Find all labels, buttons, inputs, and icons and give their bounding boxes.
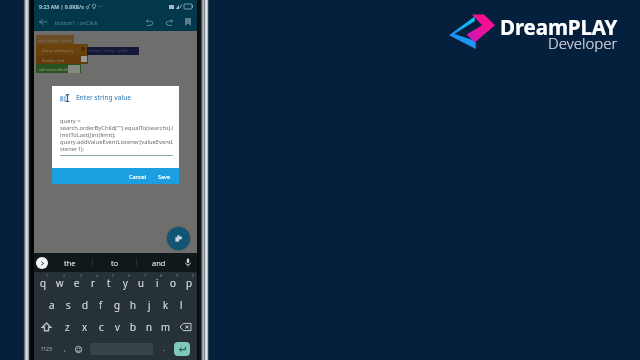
- staticText: to: [111, 258, 119, 268]
- staticText: w: [56, 276, 64, 290]
- button[interactable]: Add block: [167, 227, 190, 250]
- button[interactable]: u: [133, 272, 149, 294]
- staticText: m: [161, 320, 170, 334]
- staticText: y: [123, 276, 128, 290]
- staticText: the: [64, 258, 76, 268]
- staticText: p: [186, 276, 192, 290]
- staticText: 4: [96, 273, 99, 278]
- staticText: firebase : (Query) getRef: [89, 49, 128, 53]
- staticText: ,: [64, 344, 66, 354]
- staticText: ?123: [41, 346, 52, 353]
- button[interactable]: l: [173, 294, 189, 316]
- button[interactable]: y: [117, 272, 133, 294]
- staticText: 9:23 AM | 0.0KB/s: [39, 3, 84, 10]
- button[interactable]: h: [125, 294, 141, 316]
- button[interactable]: and: [137, 253, 180, 272]
- staticText: b: [130, 320, 136, 334]
- button[interactable]: Back: [34, 13, 52, 31]
- button[interactable]: s: [60, 294, 77, 316]
- staticText: 1: [46, 273, 49, 278]
- staticText: t: [107, 276, 111, 290]
- button[interactable]: v: [109, 316, 125, 338]
- staticText: q: [40, 276, 46, 290]
- staticText: a: [49, 298, 55, 312]
- staticText: query = search.orderByChild("").equalTo(…: [60, 117, 173, 153]
- staticText: u: [138, 276, 144, 290]
- button[interactable]: Save: [179, 13, 196, 31]
- button[interactable]: n: [141, 316, 157, 338]
- staticText: Query searchquery: [42, 48, 74, 53]
- button[interactable]: .: [157, 338, 171, 360]
- button[interactable]: c: [93, 316, 109, 338]
- button[interactable]: Save: [155, 170, 174, 183]
- staticText: DreamPLAY: [500, 13, 618, 41]
- staticText: 6: [128, 273, 131, 278]
- staticText: Number limit: [42, 58, 65, 63]
- button[interactable]: f: [93, 294, 109, 316]
- button[interactable]: ?123: [34, 338, 59, 360]
- button[interactable]: x: [76, 316, 93, 338]
- staticText: 5: [112, 273, 115, 278]
- staticText: l: [180, 298, 183, 312]
- staticText: and: [152, 258, 166, 268]
- button[interactable]: a: [43, 294, 60, 316]
- button[interactable]: to: [93, 253, 136, 272]
- staticText: r: [91, 276, 95, 290]
- staticText: 9: [176, 273, 179, 278]
- staticText: k: [163, 298, 168, 312]
- button[interactable]: Emoji: [71, 338, 86, 360]
- staticText: Cancel: [129, 173, 147, 180]
- button[interactable]: Cancel: [126, 170, 150, 183]
- button[interactable]: m: [157, 316, 173, 338]
- button[interactable]: Undo: [139, 13, 159, 31]
- button[interactable]: r: [85, 272, 101, 294]
- staticText: ···: [98, 3, 103, 10]
- button[interactable]: the: [48, 253, 92, 272]
- staticText: o: [170, 276, 176, 290]
- staticText: s: [66, 298, 71, 312]
- button[interactable]: Voice input: [180, 253, 196, 272]
- button[interactable]: d: [77, 294, 93, 316]
- staticText: d: [82, 298, 88, 312]
- button[interactable]: More options: [36, 257, 48, 269]
- staticText: h: [130, 298, 136, 312]
- staticText: f: [99, 298, 103, 312]
- staticText: c: [99, 320, 104, 334]
- button[interactable]: p: [181, 272, 197, 294]
- button[interactable]: ,: [59, 338, 71, 360]
- staticText: Save: [158, 173, 171, 180]
- staticText: when button1 clicked: [38, 38, 73, 43]
- button[interactable]: Backspace: [173, 316, 197, 338]
- button[interactable]: i: [149, 272, 165, 294]
- staticText: j: [148, 298, 151, 312]
- button[interactable]: z: [59, 316, 76, 338]
- staticText: z: [65, 320, 70, 334]
- staticText: v: [115, 320, 120, 334]
- staticText: i: [156, 276, 159, 290]
- button[interactable]: Redo: [159, 13, 179, 31]
- button[interactable]: q: [34, 272, 51, 294]
- staticText: g: [114, 298, 120, 312]
- button[interactable]: e: [68, 272, 85, 294]
- staticText: e: [74, 276, 80, 290]
- staticText: .: [163, 344, 165, 354]
- button[interactable]: w: [51, 272, 68, 294]
- staticText: Enter string value: [76, 93, 132, 102]
- staticText: 3: [80, 273, 83, 278]
- staticText: 7: [144, 273, 147, 278]
- button[interactable]: g: [109, 294, 125, 316]
- button[interactable]: j: [141, 294, 157, 316]
- staticText: 2: [63, 273, 66, 278]
- button[interactable]: Enter: [174, 342, 190, 356]
- button[interactable]: k: [157, 294, 173, 316]
- staticText: 8: [160, 273, 163, 278]
- button[interactable]: b: [125, 316, 141, 338]
- button[interactable]: Shift: [34, 316, 59, 338]
- button[interactable]: t: [101, 272, 117, 294]
- staticText: x: [82, 320, 88, 334]
- button[interactable]: o: [165, 272, 181, 294]
- staticText: n: [146, 320, 152, 334]
- staticText: 0: [192, 273, 195, 278]
- staticText: button1 : onClick: [55, 19, 98, 26]
